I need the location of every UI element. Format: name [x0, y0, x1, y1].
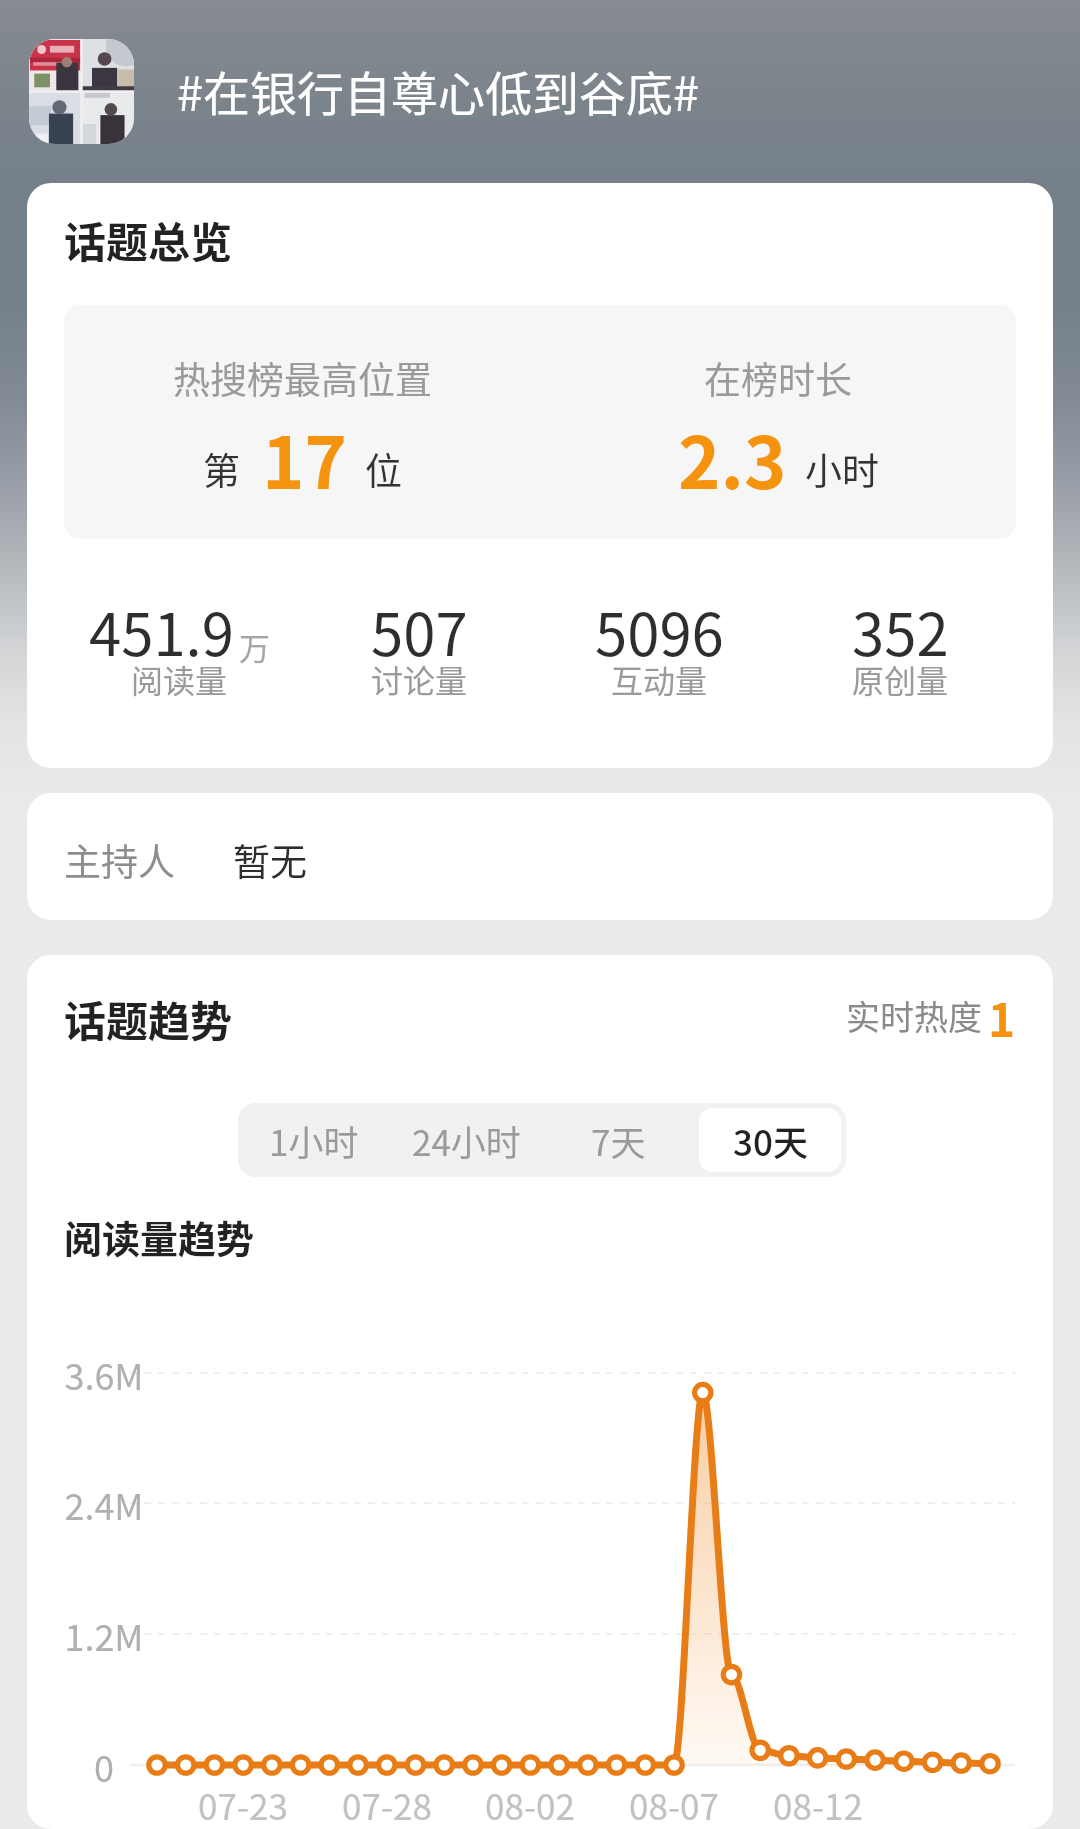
button[interactable]: 1小时	[243, 1108, 385, 1172]
staticText: 07-23	[163, 1779, 323, 1829]
button[interactable]: 30天	[699, 1108, 841, 1172]
staticText: 08-02	[450, 1779, 610, 1829]
staticText: 7天	[591, 1115, 646, 1166]
staticText: 位	[365, 442, 402, 496]
staticText: 24小时	[412, 1115, 521, 1166]
staticText: 原创量	[852, 656, 949, 702]
button[interactable]: 7天	[547, 1108, 689, 1172]
staticText: 2.4M	[27, 1478, 181, 1530]
staticText: 话题趋势	[64, 988, 233, 1049]
staticText: 阅读量趋势	[64, 1209, 255, 1264]
staticText: 507	[371, 589, 468, 673]
staticText: 在榜时长	[704, 351, 852, 405]
staticText: 阅读量	[131, 656, 228, 702]
staticText: #在银行自尊心低到谷底#	[177, 56, 700, 124]
staticText: 08-12	[738, 1779, 898, 1829]
staticText: 1小时	[269, 1115, 359, 1166]
staticText: 5096	[595, 589, 724, 673]
staticText: 话题总览	[64, 209, 233, 270]
button[interactable]: 主持人	[27, 793, 1053, 920]
staticText: 小时	[805, 442, 879, 496]
staticText: 1	[988, 984, 1016, 1051]
staticText: 30天	[733, 1115, 808, 1166]
staticText: 17	[262, 405, 347, 509]
button[interactable]: 话题封面	[29, 39, 134, 144]
staticText: 讨论量	[371, 656, 468, 702]
staticText: 07-28	[307, 1779, 467, 1829]
staticText: 2.3	[678, 405, 787, 509]
staticText: 451.9	[89, 589, 234, 673]
staticText: 3.6M	[27, 1348, 181, 1400]
staticText: 热搜榜最高位置	[173, 351, 432, 405]
staticText: 0	[27, 1740, 181, 1792]
staticText: 万	[239, 624, 270, 669]
staticText: 主持人	[64, 833, 175, 887]
staticText: 第	[203, 442, 240, 496]
staticText: 1.2M	[27, 1609, 181, 1661]
button[interactable]: 24小时	[395, 1108, 537, 1172]
staticText: 08-07	[594, 1779, 754, 1829]
staticText: 互动量	[611, 656, 708, 702]
staticText: 实时热度	[846, 991, 982, 1040]
staticText: 352	[852, 589, 949, 673]
staticText: 暂无	[233, 833, 307, 887]
